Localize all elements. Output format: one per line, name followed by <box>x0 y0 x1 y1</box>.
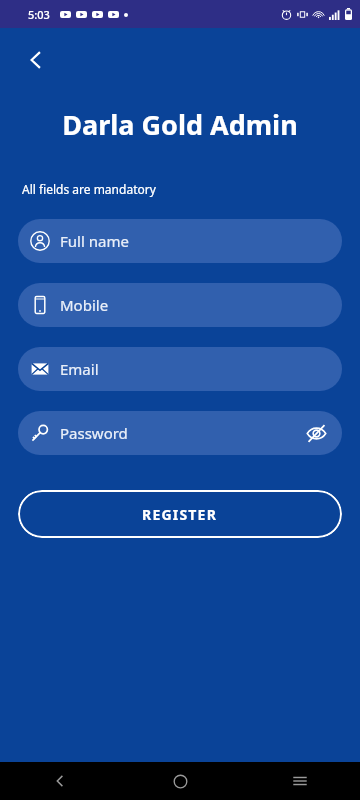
button[interactable]: Back <box>14 38 58 82</box>
button[interactable]: Email <box>18 347 342 391</box>
button[interactable]: Mobile <box>18 283 342 327</box>
staticText: Full name <box>60 231 328 251</box>
button[interactable]: Recent apps <box>240 762 360 800</box>
staticText: All fields are mandatory <box>22 181 156 197</box>
button[interactable]: Home <box>120 762 240 800</box>
staticText: REGISTER <box>142 505 218 524</box>
button[interactable]: REGISTER <box>18 490 342 538</box>
staticText: Darla Gold Admin <box>0 106 360 143</box>
staticText: Password <box>60 423 304 443</box>
button[interactable]: Full name <box>18 219 342 263</box>
button[interactable]: Toggle password visibility <box>304 421 328 445</box>
staticText: 5:03 <box>28 7 50 22</box>
button[interactable]: Password <box>18 411 342 455</box>
staticText: Email <box>60 359 328 379</box>
button[interactable]: Back <box>0 762 120 800</box>
staticText: Mobile <box>60 295 328 315</box>
